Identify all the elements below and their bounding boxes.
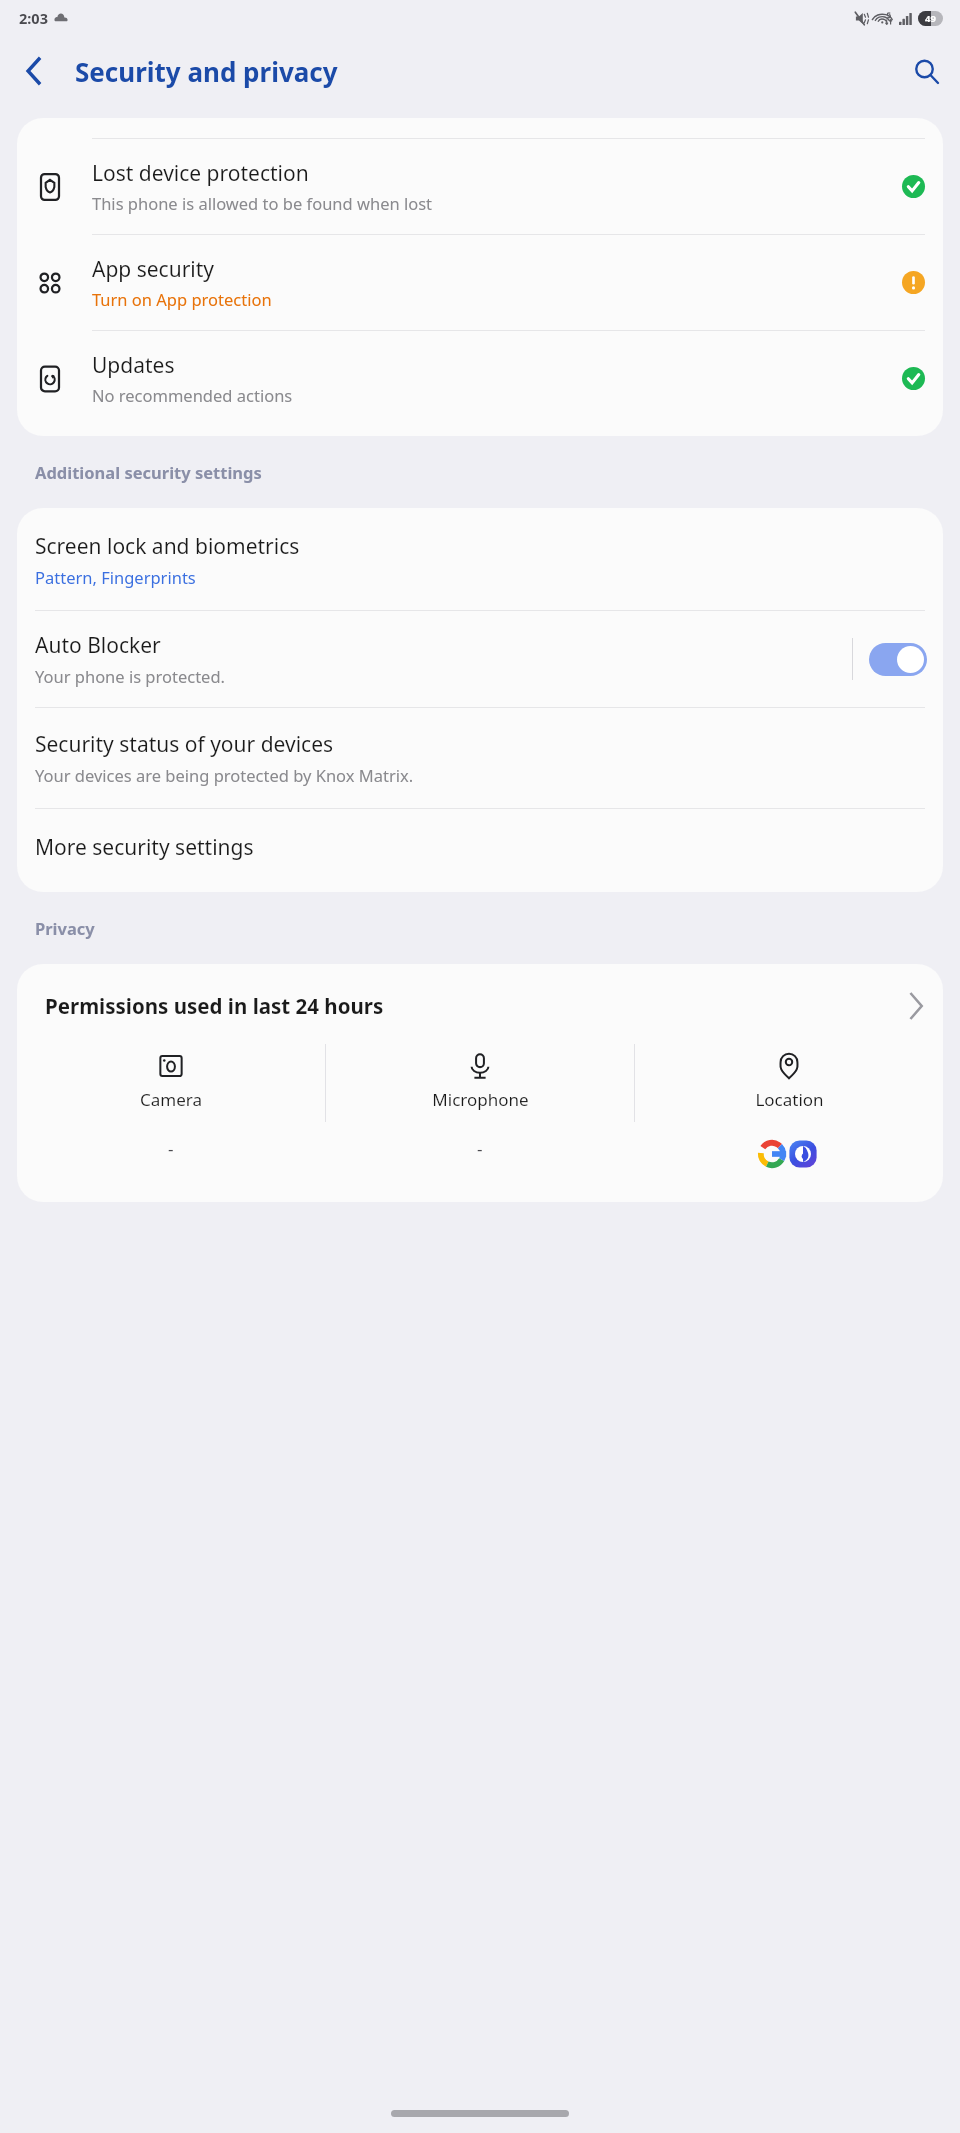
button[interactable]: Back	[9, 47, 57, 95]
button[interactable]: Location	[635, 1044, 943, 1184]
staticText: App security	[92, 255, 215, 284]
staticText: No recommended actions	[92, 384, 293, 406]
button[interactable]: Updates	[17, 331, 943, 426]
button[interactable]: Auto Blocker	[17, 611, 943, 707]
staticText: Updates	[92, 351, 175, 380]
button[interactable]: Microphone	[326, 1044, 634, 1184]
staticText: 2:03	[19, 8, 48, 28]
button[interactable]: More security settings	[17, 809, 943, 892]
staticText: Your phone is protected.	[35, 665, 225, 687]
button[interactable]: Security status of your devices	[17, 708, 943, 808]
button[interactable]: Search	[901, 46, 951, 96]
staticText: Lost device protection	[92, 159, 309, 188]
button[interactable]: Permissions used in last 24 hours	[17, 964, 943, 1044]
button[interactable]: Auto Blocker toggle	[869, 643, 927, 676]
staticText: Permissions used in last 24 hours	[45, 992, 910, 1020]
staticText: Location	[755, 1088, 824, 1111]
staticText: This phone is allowed to be found when l…	[92, 192, 433, 214]
button[interactable]: Screen lock and biometrics	[17, 508, 943, 610]
staticText: Auto Blocker	[35, 631, 161, 660]
staticText: Your devices are being protected by Knox…	[35, 764, 414, 786]
staticText: 49	[925, 12, 936, 25]
staticText: -	[168, 1137, 174, 1160]
staticText: Security and privacy	[75, 54, 338, 89]
staticText: Camera	[140, 1088, 202, 1111]
staticText: Pattern, Fingerprints	[35, 566, 196, 588]
button[interactable]: Lost device protection	[17, 139, 943, 234]
staticText: Microphone	[432, 1088, 529, 1111]
button[interactable]: Camera	[17, 1044, 325, 1184]
staticText: Turn on App protection	[92, 288, 272, 310]
staticText: -	[477, 1137, 483, 1160]
staticText: Security status of your devices	[35, 730, 334, 759]
staticText: Privacy	[35, 917, 95, 939]
button[interactable]: App security	[17, 235, 943, 330]
staticText: Additional security settings	[35, 461, 262, 483]
staticText: Screen lock and biometrics	[35, 532, 300, 561]
staticText: More security settings	[35, 833, 254, 862]
